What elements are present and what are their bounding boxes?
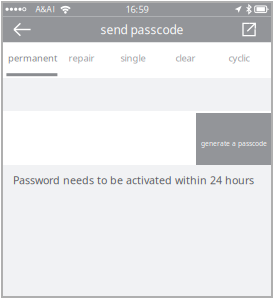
staticText: 16:59	[125, 3, 148, 15]
staticText: Password needs to be activated within 24…	[13, 173, 254, 187]
button[interactable]: Back	[2, 16, 40, 42]
button[interactable]: cyclic	[195, 42, 249, 78]
staticText: A&AT	[35, 4, 55, 14]
button[interactable]: repair	[57, 42, 94, 78]
staticText: send passcode	[100, 21, 183, 37]
staticText: clear	[175, 52, 195, 64]
button[interactable]: generate a passcode	[196, 113, 272, 165]
button[interactable]: clear	[145, 42, 195, 78]
staticText: cyclic	[228, 52, 249, 64]
staticText: permanent	[8, 52, 57, 64]
staticText: repair	[68, 52, 94, 64]
button[interactable]: permanent	[2, 42, 57, 78]
button[interactable]: Share	[233, 17, 272, 42]
staticText: single	[120, 52, 145, 64]
button[interactable]: single	[94, 42, 145, 78]
staticText: generate a passcode	[201, 139, 267, 148]
